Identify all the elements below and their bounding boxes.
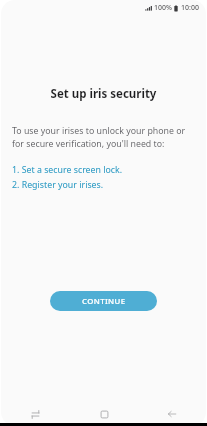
staticText: 10:00	[181, 3, 199, 13]
staticText: 2. Register your irises.	[12, 179, 104, 191]
button[interactable]: Home	[70, 402, 138, 426]
button[interactable]: CONTINUE	[50, 291, 157, 311]
staticText: 1. Set a secure screen lock.	[12, 164, 123, 176]
staticText: CONTINUE	[82, 296, 126, 307]
button[interactable]: Recents	[1, 402, 70, 426]
staticText: To use your irises to unlock your phone …	[12, 125, 192, 150]
button[interactable]: 2. Register your irises.	[12, 179, 192, 191]
button[interactable]: Back	[138, 402, 206, 426]
staticText: Set up iris security	[1, 86, 206, 102]
staticText: 100%	[154, 3, 172, 13]
button[interactable]: 1. Set a secure screen lock.	[12, 164, 192, 176]
